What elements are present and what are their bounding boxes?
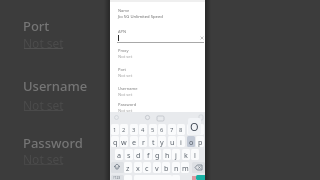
button[interactable]: Name bbox=[118, 8, 198, 20]
staticText: s bbox=[127, 150, 131, 160]
button[interactable]: Proxy bbox=[118, 48, 198, 60]
button[interactable] bbox=[192, 162, 205, 173]
staticText: ?123 bbox=[113, 175, 121, 180]
staticText: c bbox=[145, 163, 149, 173]
staticText: Port bbox=[118, 67, 126, 72]
staticText: w bbox=[121, 137, 127, 147]
staticText: O bbox=[190, 119, 199, 134]
staticText: Username bbox=[118, 86, 138, 91]
button[interactable]: 8 bbox=[177, 124, 185, 135]
button[interactable]: e bbox=[130, 136, 138, 147]
button[interactable]: b bbox=[162, 162, 170, 173]
button[interactable]: 4 bbox=[139, 124, 147, 135]
staticText: l bbox=[194, 150, 196, 160]
staticText: 4 bbox=[141, 126, 145, 134]
staticText: q bbox=[113, 137, 118, 147]
staticText: u bbox=[170, 137, 175, 147]
button[interactable]: r bbox=[139, 136, 147, 147]
button[interactable]: Username bbox=[118, 86, 198, 98]
staticText: APN bbox=[118, 29, 127, 34]
button[interactable]: a bbox=[115, 149, 123, 160]
button[interactable]: x bbox=[134, 162, 142, 173]
button[interactable]: l bbox=[191, 149, 199, 160]
staticText: p bbox=[198, 137, 203, 147]
staticText: e bbox=[132, 137, 137, 147]
staticText: d bbox=[136, 150, 141, 160]
button[interactable]: d bbox=[134, 149, 142, 160]
staticText: o bbox=[189, 137, 194, 147]
button[interactable]: y bbox=[158, 136, 166, 147]
button[interactable] bbox=[111, 162, 124, 173]
button[interactable]: o bbox=[187, 136, 195, 147]
button[interactable]: 3 bbox=[130, 124, 138, 135]
button[interactable]: j bbox=[172, 149, 180, 160]
staticText: Not set bbox=[23, 35, 64, 51]
staticText: Password bbox=[118, 102, 137, 107]
button[interactable]: p bbox=[196, 136, 204, 147]
staticText: Proxy bbox=[118, 48, 129, 53]
button[interactable]: t bbox=[149, 136, 157, 147]
button[interactable] bbox=[196, 175, 206, 180]
staticText: r bbox=[142, 137, 145, 147]
staticText: 0 bbox=[198, 126, 202, 134]
button[interactable]: 0 bbox=[196, 124, 204, 135]
button[interactable]: 9 bbox=[187, 124, 195, 135]
button[interactable]: q bbox=[111, 136, 119, 147]
staticText: Jio 5G Unlimited Speed bbox=[118, 14, 163, 20]
staticText: Username bbox=[23, 77, 88, 95]
button[interactable]: 5 bbox=[149, 124, 157, 135]
button[interactable]: Password bbox=[118, 102, 198, 114]
staticText: 6 bbox=[160, 126, 164, 134]
button[interactable]: k bbox=[182, 149, 190, 160]
button[interactable] bbox=[111, 175, 124, 180]
staticText: b bbox=[164, 163, 169, 173]
staticText: m bbox=[182, 163, 189, 173]
staticText: f bbox=[147, 150, 150, 160]
button[interactable]: v bbox=[153, 162, 161, 173]
button[interactable]: c bbox=[143, 162, 151, 173]
button[interactable]: 2 bbox=[120, 124, 128, 135]
staticText: i bbox=[180, 137, 182, 147]
staticText: h bbox=[165, 150, 170, 160]
button[interactable]: n bbox=[172, 162, 180, 173]
button[interactable]: f bbox=[144, 149, 152, 160]
button[interactable]: Port bbox=[118, 67, 198, 79]
staticText: x bbox=[136, 163, 140, 173]
button[interactable]: m bbox=[181, 162, 189, 173]
staticText: Not set bbox=[118, 54, 133, 60]
staticText: Not set bbox=[118, 92, 133, 98]
staticText: 8 bbox=[179, 126, 183, 134]
staticText: n bbox=[174, 163, 179, 173]
staticText: 7 bbox=[170, 126, 174, 134]
button[interactable]: w bbox=[120, 136, 128, 147]
staticText: t bbox=[152, 137, 155, 147]
button[interactable]: h bbox=[163, 149, 171, 160]
staticText: 1 bbox=[113, 126, 117, 134]
button[interactable]: 7 bbox=[168, 124, 176, 135]
button[interactable]: u bbox=[168, 136, 176, 147]
staticText: y bbox=[160, 137, 164, 147]
staticText: z bbox=[126, 163, 130, 173]
staticText: Port bbox=[23, 17, 50, 35]
button[interactable]: 1 bbox=[111, 124, 119, 135]
staticText: 5 bbox=[151, 126, 155, 134]
staticText: Not set bbox=[118, 73, 133, 79]
button[interactable]: i bbox=[177, 136, 185, 147]
staticText: v bbox=[155, 163, 159, 173]
staticText: k bbox=[184, 150, 188, 160]
button[interactable]: s bbox=[125, 149, 133, 160]
staticText: a bbox=[117, 150, 122, 160]
button[interactable]: g bbox=[153, 149, 161, 160]
staticText: Not set bbox=[23, 151, 64, 167]
staticText: 9 bbox=[189, 126, 193, 134]
button[interactable]: 6 bbox=[158, 124, 166, 135]
staticText: g bbox=[155, 150, 160, 160]
staticText: Name bbox=[118, 8, 130, 13]
button[interactable]: z bbox=[124, 162, 132, 173]
staticText: 2 bbox=[122, 126, 126, 134]
staticText: Not set bbox=[118, 108, 133, 114]
staticText: 3 bbox=[132, 126, 136, 134]
